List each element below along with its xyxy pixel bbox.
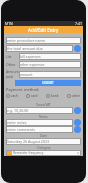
button[interactable]: SUBMIT	[15, 80, 81, 86]
button[interactable]: bill-expenses	[20, 53, 80, 60]
button[interactable]: enter procedure name	[7, 37, 80, 44]
button[interactable]: e.g. 10,20.00	[7, 107, 72, 114]
staticText: Category	[37, 146, 51, 150]
staticText: Reminder frequency	[13, 151, 44, 155]
staticText: Date	[40, 134, 48, 138]
staticText: amount	[20, 72, 33, 77]
button[interactable]: cash	[6, 94, 18, 98]
staticText: enter procedure name	[7, 38, 45, 43]
staticText: Taxes/VAT	[36, 103, 51, 107]
staticText: other	[72, 94, 81, 98]
button[interactable]: Attach	[74, 107, 81, 114]
staticText: Other	[6, 62, 19, 67]
staticText: SUBMIT	[42, 81, 54, 85]
button[interactable]: Add/Edit Entry	[4, 26, 83, 33]
staticText: MTN	[5, 21, 13, 26]
button[interactable]: enter notes	[7, 119, 72, 126]
button[interactable]: other expenses	[20, 61, 80, 68]
staticText: 7:41	[75, 21, 82, 26]
button[interactable]: Reminder frequency	[6, 150, 81, 156]
button[interactable]: card	[26, 94, 38, 98]
staticText: enter comments	[7, 127, 35, 132]
button[interactable]: Attach	[74, 126, 81, 133]
staticText: Saturday 26 August 2023	[7, 139, 50, 144]
button[interactable]: Attach	[74, 119, 81, 126]
button[interactable]: enter comments	[7, 126, 72, 133]
staticText: List	[6, 54, 19, 59]
staticText: bill-expenses	[20, 54, 41, 59]
button[interactable]: bank	[46, 94, 59, 98]
staticText: other expenses	[20, 62, 45, 67]
staticText: Amount paid	[6, 69, 19, 79]
staticText: Notes	[39, 115, 48, 119]
staticText: cash	[11, 94, 18, 98]
staticText: enter notes	[7, 120, 27, 125]
staticText: card	[31, 94, 38, 98]
button[interactable]: Attach	[74, 45, 81, 52]
button[interactable]: Saturday 26 August 2023	[7, 138, 80, 145]
button[interactable]: other	[67, 94, 81, 98]
staticText: bank	[51, 94, 59, 98]
staticText: Payment method	[6, 87, 39, 92]
staticText: e.g. 10,20.00	[7, 108, 29, 113]
staticText: Add/Edit Entry	[28, 27, 59, 33]
button[interactable]: amount	[20, 71, 80, 78]
staticText: the total amount due	[7, 46, 43, 51]
button[interactable]: the total amount due	[7, 45, 72, 52]
